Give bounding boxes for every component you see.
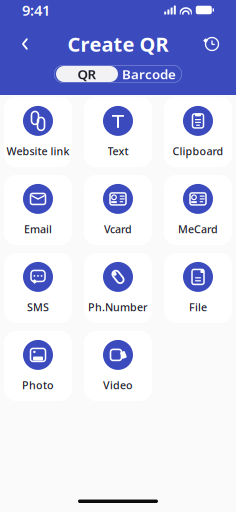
staticText: Photo bbox=[22, 378, 54, 392]
staticText: Website link bbox=[6, 144, 69, 158]
staticText: MeCard bbox=[178, 222, 218, 236]
staticText: Video bbox=[103, 378, 133, 392]
staticText: Ph.Number bbox=[88, 300, 148, 314]
staticText: SMS bbox=[27, 300, 49, 314]
staticText: 9:41 bbox=[22, 0, 50, 20]
button[interactable]: Video bbox=[84, 331, 152, 401]
button[interactable]: History bbox=[196, 29, 226, 59]
button[interactable]: Photo bbox=[4, 331, 72, 401]
staticText: File bbox=[189, 300, 207, 314]
button[interactable]: Ph.Number bbox=[84, 253, 152, 323]
button[interactable]: Website link bbox=[4, 97, 72, 167]
button[interactable]: Email bbox=[4, 175, 72, 245]
button[interactable]: Back bbox=[10, 29, 40, 59]
button[interactable]: QR bbox=[56, 66, 118, 82]
staticText: QR bbox=[77, 65, 96, 83]
staticText: Text bbox=[107, 144, 128, 158]
button[interactable]: File bbox=[164, 253, 232, 323]
button[interactable]: Clipboard bbox=[164, 97, 232, 167]
button[interactable]: Barcode bbox=[118, 66, 180, 82]
button[interactable]: MeCard bbox=[164, 175, 232, 245]
staticText: Barcode bbox=[122, 65, 176, 83]
staticText: Email bbox=[24, 222, 52, 236]
staticText: Create QR bbox=[67, 31, 168, 57]
staticText: Vcard bbox=[104, 222, 132, 236]
button[interactable]: Vcard bbox=[84, 175, 152, 245]
button[interactable]: SMS bbox=[4, 253, 72, 323]
button[interactable]: Text bbox=[84, 97, 152, 167]
staticText: Clipboard bbox=[172, 144, 223, 158]
